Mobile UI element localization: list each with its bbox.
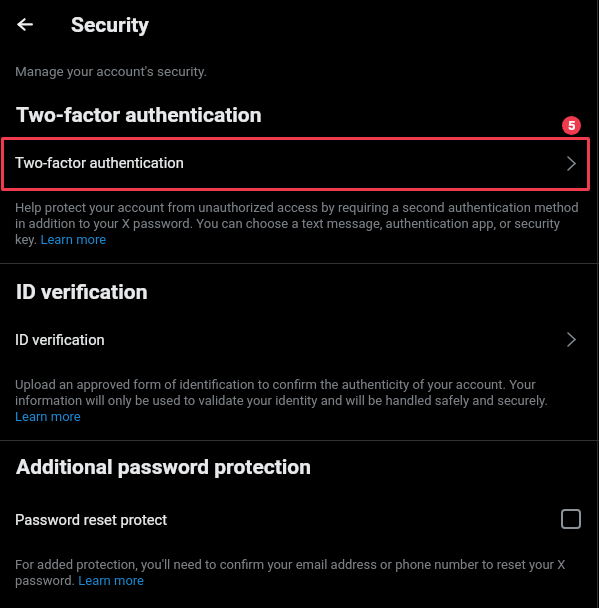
staticText: 5 bbox=[568, 118, 576, 133]
staticText: Manage your account's security. bbox=[15, 63, 208, 79]
button[interactable]: Back bbox=[5, 4, 45, 44]
staticText: Help protect your account from unauthori… bbox=[15, 199, 583, 247]
staticText: ID verification bbox=[16, 280, 148, 305]
button[interactable]: Two-factor authentication bbox=[0, 138, 589, 189]
staticText: Upload an approved form of identificatio… bbox=[15, 376, 583, 424]
staticText: For added protection, you'll need to con… bbox=[15, 556, 583, 588]
button[interactable]: Password reset protect bbox=[0, 502, 599, 537]
button[interactable]: 5 notifications bbox=[562, 116, 581, 135]
button[interactable]: ID verification bbox=[0, 323, 599, 363]
staticText: Security bbox=[71, 13, 149, 38]
staticText: Additional password protection bbox=[16, 455, 312, 480]
other: Password reset protect, off bbox=[561, 509, 581, 529]
staticText: ID verification bbox=[15, 331, 105, 348]
staticText: Two-factor authentication bbox=[15, 154, 184, 171]
staticText: Password reset protect bbox=[15, 511, 168, 528]
staticText: Two-factor authentication bbox=[16, 103, 262, 128]
